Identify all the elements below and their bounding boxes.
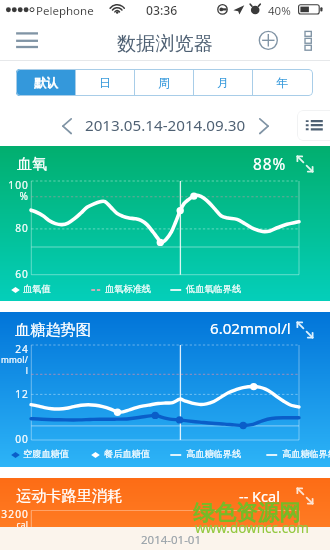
staticText: 88% — [253, 154, 287, 175]
staticText: % — [0, 189, 29, 203]
staticText: 00 — [0, 432, 29, 446]
staticText: 日 — [99, 75, 111, 90]
staticText: 高血糖临界线 — [282, 448, 330, 460]
button[interactable]: 2013.05.14-2014.09.30 — [62, 118, 269, 134]
staticText: 血氧 — [17, 154, 48, 173]
staticText: 血氧标准线 — [105, 283, 151, 295]
button[interactable]: Menu — [8, 25, 46, 56]
staticText: 24 — [0, 342, 29, 356]
staticText: 12 — [0, 387, 29, 401]
staticText: 绿色资源网 — [193, 499, 301, 526]
staticText: 周 — [158, 75, 170, 90]
staticText: 03:36 — [146, 2, 178, 19]
staticText: 血糖趋势图 — [15, 320, 91, 339]
staticText: 运动卡路里消耗 — [16, 486, 123, 505]
staticText: www.downcc.com — [195, 519, 309, 537]
staticText: 餐后血糖值 — [104, 448, 150, 460]
button[interactable]: More options — [295, 25, 321, 56]
button[interactable]: 血糖趋势图 — [0, 312, 330, 467]
staticText: 年 — [276, 75, 288, 90]
button[interactable]: 日 — [76, 69, 134, 96]
staticText: 月 — [217, 75, 229, 90]
staticText: 6.02mmol/l — [210, 318, 291, 339]
staticText: 60 — [0, 267, 29, 281]
staticText: -- Kcal — [239, 486, 280, 506]
staticText: 80 — [0, 221, 29, 235]
staticText: 2013.05.14-2014.09.30 — [85, 115, 246, 131]
staticText: 100 — [0, 178, 29, 192]
staticText: 血氧值 — [23, 283, 51, 295]
staticText: 低血氧临界线 — [186, 283, 242, 295]
staticText: 3200 — [0, 507, 29, 521]
button[interactable]: 周 — [135, 69, 193, 96]
button[interactable]: Expand chart — [294, 485, 316, 507]
staticText: cal — [0, 519, 28, 530]
staticText: 40% — [268, 3, 291, 19]
button[interactable]: 运动卡路里消耗 — [0, 478, 330, 527]
button[interactable]: Expand chart — [294, 319, 316, 341]
button[interactable]: List view — [297, 110, 330, 141]
button[interactable]: 年 — [253, 69, 311, 96]
staticText: 数据浏览器 — [117, 32, 213, 56]
button[interactable]: 血氧 — [0, 146, 330, 301]
button[interactable]: 月 — [194, 69, 252, 96]
staticText: 高血糖临界线 — [186, 448, 242, 460]
staticText: 2014-01-01 — [141, 532, 202, 548]
staticText: 默认 — [34, 75, 58, 90]
staticText: 空腹血糖值 — [23, 448, 69, 460]
staticText: Pelephone — [36, 3, 94, 19]
staticText: mmol/l — [0, 354, 28, 376]
button[interactable]: Expand chart — [294, 153, 316, 175]
button[interactable]: 默认 — [16, 69, 75, 96]
button[interactable]: Add — [253, 25, 284, 56]
